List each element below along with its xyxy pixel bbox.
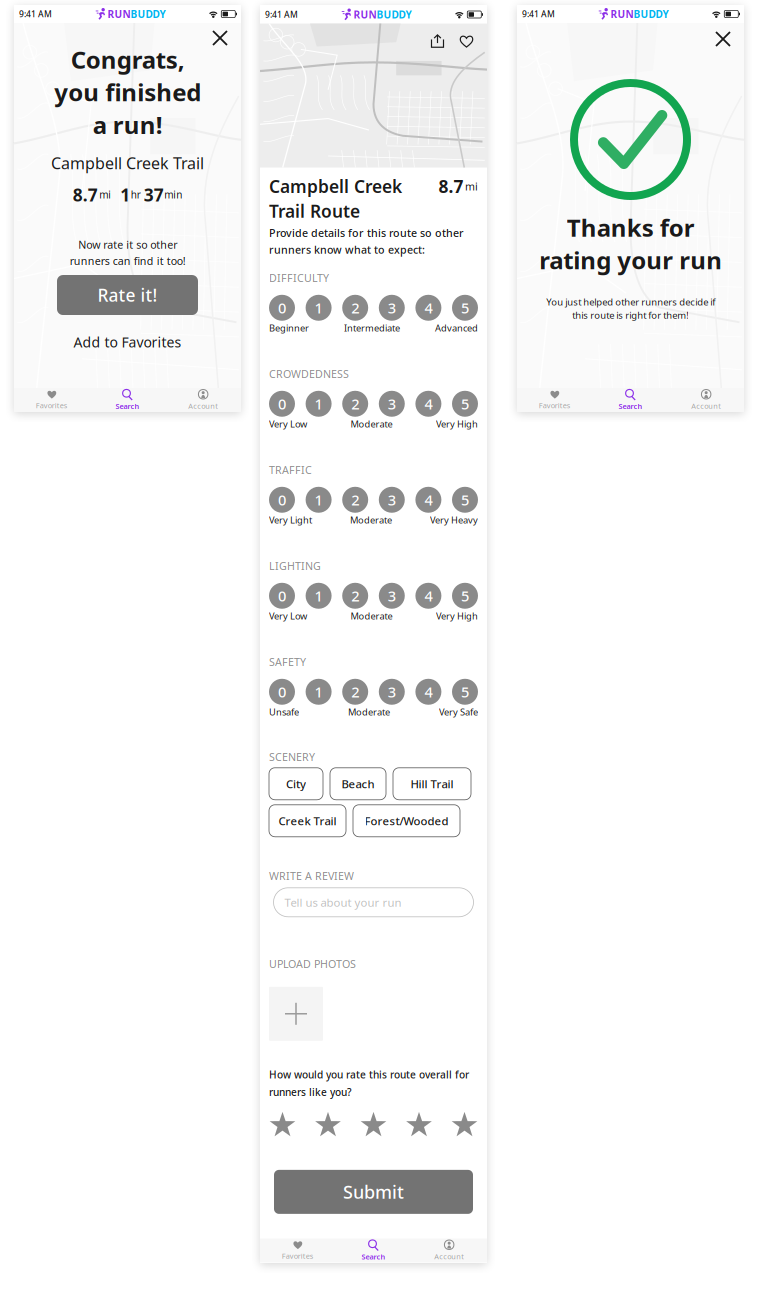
button[interactable]: 1 — [306, 391, 332, 417]
button[interactable]: Account — [411, 1238, 487, 1262]
staticText: DIFFICULTY — [269, 270, 329, 285]
staticText: Submit — [343, 1180, 404, 1204]
staticText: RUN — [610, 7, 633, 21]
button[interactable]: Share — [428, 31, 447, 50]
button[interactable]: City — [269, 768, 323, 800]
button[interactable]: 4 — [415, 583, 441, 609]
staticText: Campbell Creek Trail Route — [269, 174, 402, 223]
button[interactable]: 5 — [452, 679, 478, 705]
staticText: mi — [465, 179, 478, 193]
button[interactable]: 3 — [379, 583, 405, 609]
button[interactable]: 5 — [452, 391, 478, 417]
button[interactable]: Rate 5 stars — [451, 1112, 478, 1139]
staticText: 3 — [388, 682, 396, 702]
staticText: TRAFFIC — [269, 462, 312, 477]
button[interactable]: 5 — [452, 295, 478, 321]
staticText: BUDDY — [131, 7, 166, 21]
button[interactable]: Rate 3 stars — [360, 1112, 387, 1139]
button[interactable]: 3 — [379, 679, 405, 705]
button[interactable]: Search — [593, 388, 668, 412]
staticText: Very Low — [269, 609, 307, 622]
button[interactable]: Account — [165, 388, 241, 412]
button[interactable]: Search — [336, 1238, 411, 1262]
staticText: 37 — [144, 183, 164, 206]
staticText: Provide details for this route so other … — [269, 226, 464, 257]
button[interactable]: Submit — [274, 1170, 473, 1214]
button[interactable]: 0 — [269, 391, 295, 417]
staticText: 3 — [388, 490, 396, 510]
button[interactable]: Forest/Wooded — [353, 805, 460, 837]
staticText: 5 — [461, 394, 469, 414]
button[interactable]: 1 — [306, 487, 332, 513]
button[interactable]: 0 — [269, 295, 295, 321]
button[interactable]: Close — [209, 27, 231, 49]
button[interactable]: 5 — [452, 487, 478, 513]
button[interactable]: Add to Favorites — [65, 333, 189, 351]
button[interactable]: 0 — [269, 487, 295, 513]
staticText: 1 — [315, 394, 323, 414]
button[interactable]: 1 — [306, 583, 332, 609]
button[interactable]: Favorite — [457, 31, 476, 50]
staticText: 1 — [315, 298, 323, 318]
button[interactable]: 4 — [415, 391, 441, 417]
button[interactable]: 3 — [379, 487, 405, 513]
button[interactable]: 0 — [269, 679, 295, 705]
button[interactable]: Favorites — [260, 1238, 336, 1262]
staticText: 9:41 AM — [522, 8, 555, 20]
button[interactable]: 3 — [379, 391, 405, 417]
button[interactable]: 4 — [415, 487, 441, 513]
staticText: How would you rate this route overall fo… — [269, 1068, 469, 1099]
staticText: Very High — [436, 609, 478, 622]
button[interactable]: Beach — [330, 768, 386, 800]
button[interactable]: Favorites — [517, 388, 593, 412]
button[interactable]: 5 — [452, 583, 478, 609]
button[interactable]: 1 — [306, 295, 332, 321]
staticText: RUN — [107, 7, 130, 21]
button[interactable]: 2 — [342, 487, 368, 513]
button[interactable]: Search — [90, 388, 165, 412]
staticText: 2 — [351, 298, 359, 318]
staticText: Very Heavy — [430, 513, 478, 526]
staticText: Search — [115, 401, 139, 411]
button[interactable]: 4 — [415, 679, 441, 705]
button[interactable]: 2 — [342, 583, 368, 609]
button[interactable]: Rate 4 stars — [405, 1112, 432, 1139]
staticText: Very High — [436, 417, 478, 430]
staticText: 1 — [315, 586, 323, 606]
button[interactable]: Upload photo — [269, 987, 323, 1041]
staticText: 3 — [388, 298, 396, 318]
button[interactable]: Rate 2 stars — [314, 1112, 341, 1139]
staticText: Moderate — [350, 609, 392, 622]
staticText: Thanks for rating your run — [539, 211, 722, 276]
staticText: Tell us about your run — [284, 895, 401, 910]
staticText: Very Low — [269, 417, 307, 430]
staticText: Very Light — [269, 513, 312, 526]
button[interactable]: 2 — [342, 391, 368, 417]
staticText: 2 — [351, 586, 359, 606]
staticText: 3 — [388, 586, 396, 606]
button[interactable]: Favorites — [14, 388, 90, 412]
staticText: Rate it! — [97, 283, 157, 307]
button[interactable]: Creek Trail — [269, 805, 346, 837]
button[interactable]: 2 — [342, 679, 368, 705]
button[interactable]: Rate it! — [57, 275, 198, 315]
button[interactable]: 2 — [342, 295, 368, 321]
staticText: Forest/Wooded — [364, 813, 448, 828]
staticText: Account — [691, 401, 721, 411]
button[interactable]: Rate 1 stars — [269, 1112, 296, 1139]
button[interactable]: 1 — [306, 679, 332, 705]
button[interactable]: Account — [668, 388, 744, 412]
button[interactable]: 4 — [415, 295, 441, 321]
button[interactable]: Close — [712, 28, 734, 50]
button[interactable]: Hill Trail — [393, 768, 471, 800]
staticText: 9:41 AM — [265, 9, 298, 20]
button[interactable]: 0 — [269, 583, 295, 609]
staticText: Very Safe — [439, 705, 478, 718]
staticText: UPLOAD PHOTOS — [269, 956, 356, 971]
button[interactable]: 3 — [379, 295, 405, 321]
staticText: SAFETY — [269, 654, 306, 669]
staticText: Hill Trail — [410, 776, 453, 791]
staticText: SCENERY — [269, 749, 315, 764]
button[interactable]: Tell us about your run — [273, 888, 473, 917]
staticText: 0 — [278, 490, 286, 510]
